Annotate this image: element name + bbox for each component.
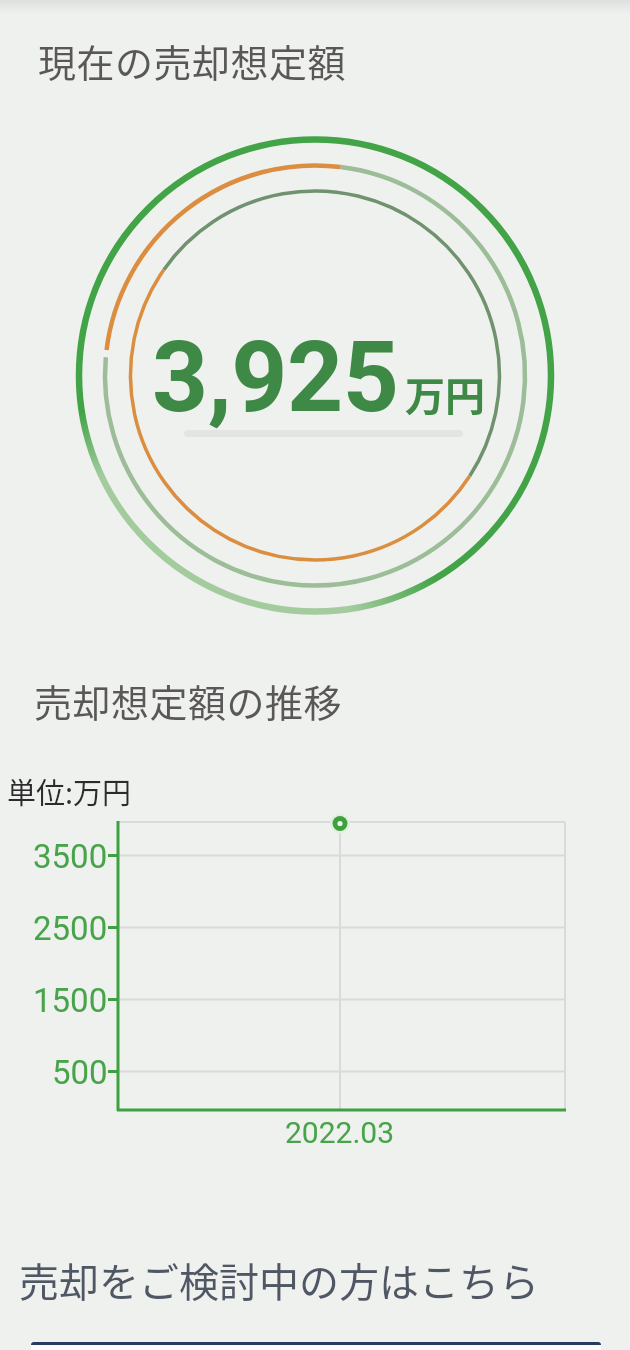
staticText: 2500: [33, 909, 108, 948]
button[interactable]: [31, 1342, 601, 1350]
staticText: 3,925: [152, 320, 399, 435]
staticText: 万円: [405, 365, 485, 423]
staticText: 現在の売却想定額: [38, 33, 347, 88]
staticText: 売却想定額の推移: [34, 673, 343, 728]
staticText: 単位:万円: [7, 770, 132, 812]
staticText: 3500: [33, 837, 108, 876]
staticText: 500: [52, 1053, 108, 1092]
staticText: 1500: [33, 981, 108, 1020]
staticText: 売却をご検討中の方はこちら: [19, 1251, 539, 1309]
staticText: 2022.03: [285, 1115, 395, 1150]
